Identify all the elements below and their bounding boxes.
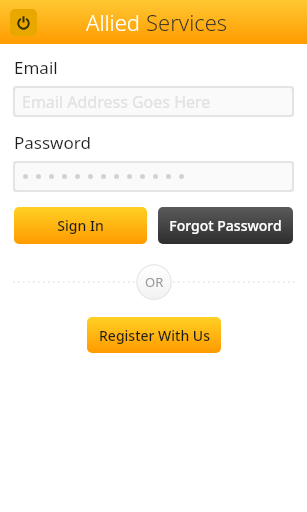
staticText: Sign In [57, 216, 104, 235]
button[interactable]: Forgot Password [158, 207, 293, 244]
staticText: Services [146, 7, 228, 37]
staticText: Register With Us [99, 326, 210, 345]
button[interactable]: Email Address Goes Here [15, 88, 292, 115]
staticText: Email Address Goes Here [22, 91, 211, 113]
staticText: Password [14, 131, 91, 154]
staticText: Email [14, 56, 58, 79]
button[interactable] [15, 163, 292, 190]
button[interactable]: Sign In [14, 207, 147, 244]
staticText: OR [145, 273, 164, 291]
button[interactable]: Register With Us [87, 317, 221, 353]
staticText: Allied [86, 7, 146, 37]
staticText: Forgot Password [169, 216, 282, 235]
button[interactable]: Power [10, 9, 37, 36]
